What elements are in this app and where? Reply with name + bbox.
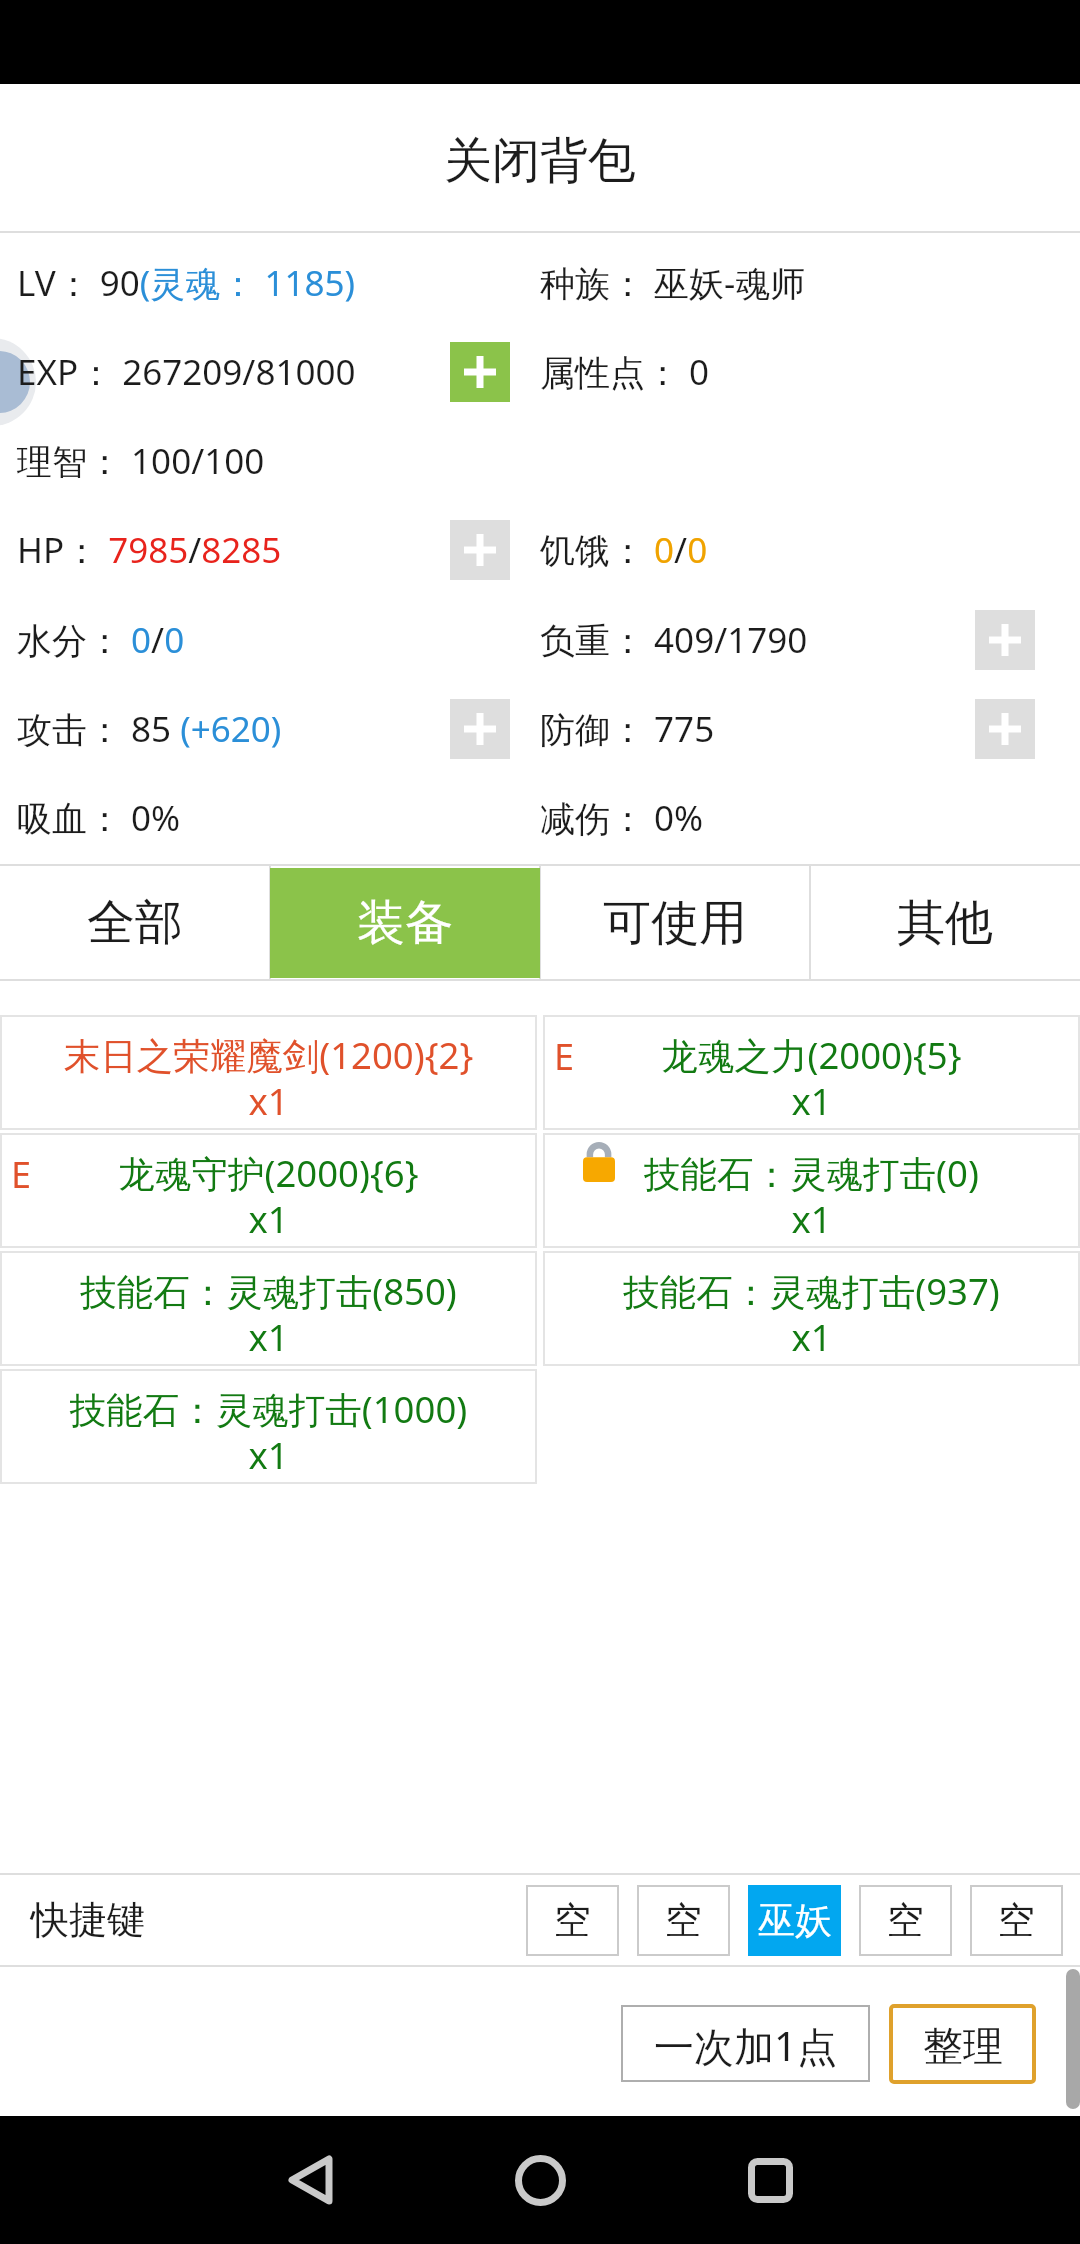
staticText: 快捷键 [31,1896,145,1944]
staticText: 减伤： 0% [540,794,704,842]
staticText: 空 [554,1897,591,1944]
button[interactable]: 末日之荣耀魔剑(1200){2} x1 [0,1015,537,1130]
staticText: 可使用 [603,893,747,953]
staticText: 负重： 409/1790 [540,616,808,664]
button[interactable]: Recents [730,2140,810,2220]
button[interactable]: Back [270,2140,350,2220]
staticText: 空 [665,1897,702,1944]
staticText: 属性点： 0 [540,348,710,396]
button[interactable]: Increase [450,520,510,580]
staticText: 装备 [357,893,453,953]
button[interactable]: Increase [450,342,510,402]
button[interactable]: 技能石：灵魂打击(850) x1 [0,1251,537,1366]
staticText: 攻击： 85 (+620) [17,705,282,753]
button[interactable]: Home [500,2140,580,2220]
button[interactable]: Assistive ball [0,338,36,426]
button[interactable]: E [0,1133,537,1248]
staticText: 整理 [923,2021,1003,2071]
button[interactable]: 空 [637,1885,730,1956]
button[interactable]: Increase [975,610,1035,670]
button[interactable]: 技能石：灵魂打击(0) x1 [543,1133,1080,1248]
staticText: E [554,1032,575,1081]
button[interactable]: 一次加1点 [621,2005,870,2082]
staticText: 龙魂之力(2000){5} x1 [543,1030,1080,1125]
button[interactable]: 其他 [810,868,1080,978]
button[interactable]: 巫妖 [748,1885,841,1956]
button[interactable]: 空 [970,1885,1063,1956]
button[interactable]: 空 [526,1885,619,1956]
staticText: E [11,1150,32,1199]
staticText: 技能石：灵魂打击(1000) x1 [0,1384,537,1479]
button[interactable]: Increase [450,699,510,759]
staticText: 吸血： 0% [17,794,181,842]
button[interactable]: 全部 [0,868,270,978]
button[interactable]: 技能石：灵魂打击(1000) x1 [0,1369,537,1484]
staticText: 关闭背包 [444,131,636,191]
staticText: 全部 [87,893,183,953]
staticText: 种族： 巫妖-魂师 [540,259,806,307]
staticText: 末日之荣耀魔剑(1200){2} x1 [0,1030,537,1125]
button[interactable]: Increase [975,699,1035,759]
button[interactable]: E [543,1015,1080,1130]
button[interactable]: 可使用 [540,868,810,978]
staticText: 其他 [897,893,993,953]
button[interactable]: 装备 [270,868,540,978]
button[interactable]: 整理 [889,2004,1036,2084]
staticText: 巫妖 [758,1897,832,1944]
staticText: 水分： 0/0 [17,616,185,664]
staticText: 技能石：灵魂打击(0) x1 [543,1148,1080,1243]
staticText: 技能石：灵魂打击(937) x1 [543,1266,1080,1361]
staticText: EXP： 267209/81000 [17,348,356,396]
staticText: 一次加1点 [654,2018,837,2073]
staticText: 技能石：灵魂打击(850) x1 [0,1266,537,1361]
staticText: 龙魂守护(2000){6} x1 [0,1148,537,1243]
staticText: 理智： 100/100 [17,437,265,485]
staticText: 空 [887,1897,924,1944]
button[interactable]: 技能石：灵魂打击(937) x1 [543,1251,1080,1366]
staticText: LV： 90(灵魂： 1185) [17,259,355,307]
staticText: 防御： 775 [540,705,715,753]
staticText: HP： 7985/8285 [17,526,282,574]
button[interactable]: 空 [859,1885,952,1956]
staticText: 空 [998,1897,1035,1944]
button[interactable]: 关闭背包 [0,87,1080,234]
staticText: 饥饿： 0/0 [540,526,708,574]
